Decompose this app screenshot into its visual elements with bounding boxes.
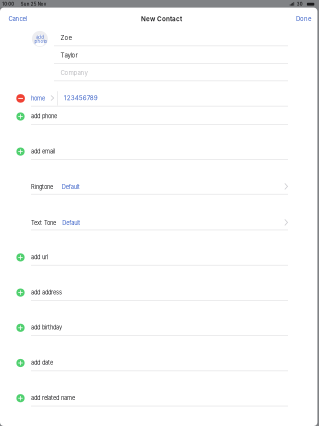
button[interactable]: add date	[0, 0, 319, 426]
staticText: home	[31, 95, 45, 102]
staticText: add date	[31, 359, 53, 366]
staticText: Default	[62, 219, 80, 226]
button[interactable]: add related name	[0, 0, 319, 426]
staticText: photo	[34, 39, 47, 44]
staticText: 30	[297, 2, 303, 7]
staticText: 123456789	[64, 94, 98, 102]
staticText: add birthday	[31, 324, 62, 331]
staticText: Company	[60, 69, 87, 76]
button[interactable]: Ringtone	[0, 0, 319, 426]
staticText: add	[36, 34, 44, 40]
staticText: Ringtone	[31, 183, 53, 190]
staticText: Cancel	[8, 15, 26, 22]
staticText: Default	[62, 183, 80, 190]
staticText: Zoe	[60, 34, 72, 41]
button[interactable]: add email	[0, 0, 319, 426]
button[interactable]: Done	[0, 0, 319, 426]
staticText: add phone	[31, 113, 57, 120]
staticText: Sun 25 Nov	[21, 2, 47, 7]
button[interactable]: Text Tone	[0, 0, 319, 426]
button[interactable]: Cancel	[0, 0, 319, 426]
button[interactable]: add phone	[0, 0, 319, 426]
staticText: 10:00	[2, 2, 14, 7]
button[interactable]: add address	[0, 0, 319, 426]
staticText: add related name	[31, 394, 75, 401]
staticText: add url	[31, 254, 48, 261]
staticText: add address	[31, 289, 62, 296]
button[interactable]: add birthday	[0, 0, 319, 426]
staticText: Taylor	[60, 51, 77, 59]
button[interactable]: Add photo	[0, 0, 319, 426]
staticText: add email	[31, 148, 55, 155]
staticText: Text Tone	[31, 219, 56, 226]
staticText: Done	[296, 15, 311, 22]
button[interactable]: add url	[0, 0, 319, 426]
staticText: New Contact	[141, 15, 182, 23]
